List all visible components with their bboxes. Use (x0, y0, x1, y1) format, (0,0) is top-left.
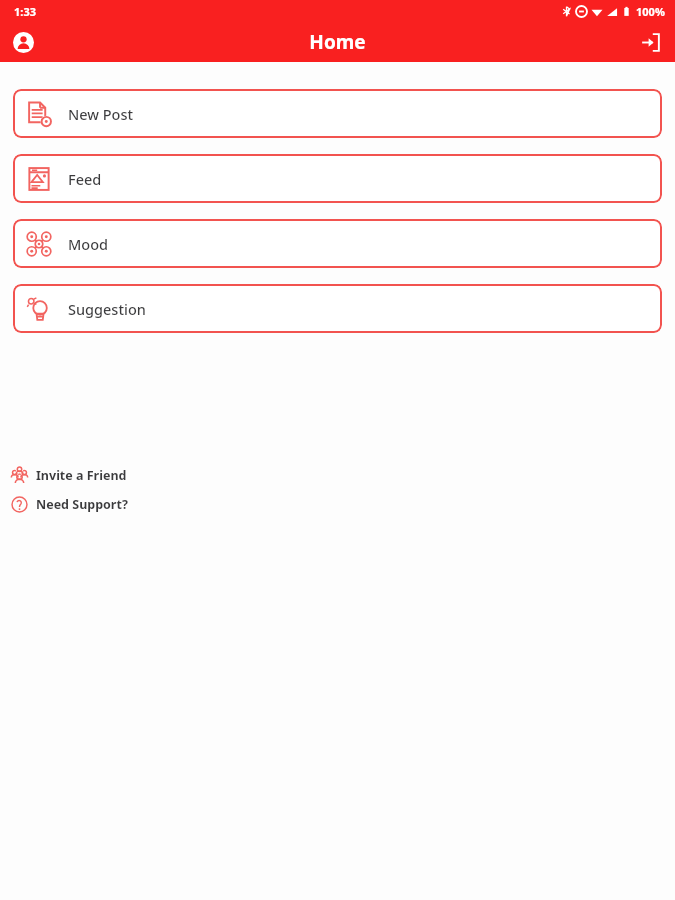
staticText: Suggestion (68, 299, 146, 319)
button[interactable]: Logout (633, 25, 667, 59)
button[interactable]: Need Support? (0, 493, 675, 515)
staticText: Home (309, 29, 366, 55)
staticText: 1:33 (14, 4, 36, 19)
button[interactable]: Mood (13, 219, 662, 268)
button[interactable]: Invite a Friend (0, 464, 675, 486)
button[interactable]: Profile (6, 25, 40, 59)
staticText: Feed (68, 169, 102, 189)
staticText: Invite a Friend (36, 467, 127, 484)
button[interactable]: Suggestion (13, 284, 662, 333)
button[interactable]: Feed (13, 154, 662, 203)
staticText: New Post (68, 104, 134, 124)
staticText: 100% (636, 4, 665, 19)
button[interactable]: New Post (13, 89, 662, 138)
staticText: Mood (68, 234, 109, 254)
staticText: Need Support? (36, 496, 128, 513)
